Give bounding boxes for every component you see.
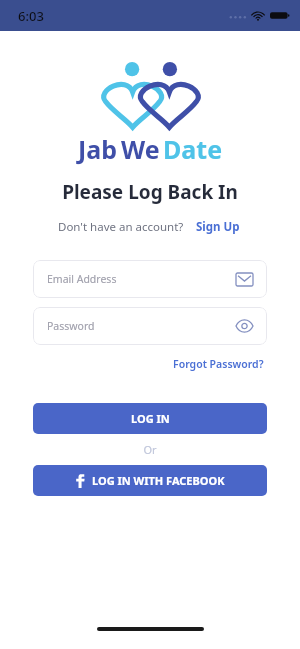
- button[interactable]: Sign Up: [194, 217, 242, 237]
- other: Email: [236, 273, 253, 286]
- staticText: Password: [47, 319, 236, 333]
- staticText: Jab: [78, 132, 118, 166]
- button[interactable]: Forgot Password?: [170, 354, 267, 374]
- button[interactable]: LOG IN: [33, 403, 267, 434]
- staticText: Please Log Back In: [0, 179, 300, 205]
- staticText: Date: [163, 132, 223, 166]
- staticText: Email Address: [47, 272, 236, 286]
- staticText: Or: [0, 442, 300, 457]
- staticText: Forgot Password?: [173, 357, 264, 371]
- staticText: Don't have an account?: [58, 219, 184, 235]
- other: Show password: [236, 320, 253, 332]
- staticText: LOG IN: [131, 411, 170, 426]
- staticText: 6:03: [18, 7, 44, 25]
- button[interactable]: LOG IN WITH FACEBOOK: [33, 465, 267, 496]
- staticText: Sign Up: [196, 219, 240, 235]
- staticText: LOG IN WITH FACEBOOK: [92, 473, 225, 488]
- button[interactable]: Password: [33, 307, 267, 345]
- staticText: We: [121, 132, 160, 166]
- button[interactable]: Email Address: [33, 260, 267, 298]
